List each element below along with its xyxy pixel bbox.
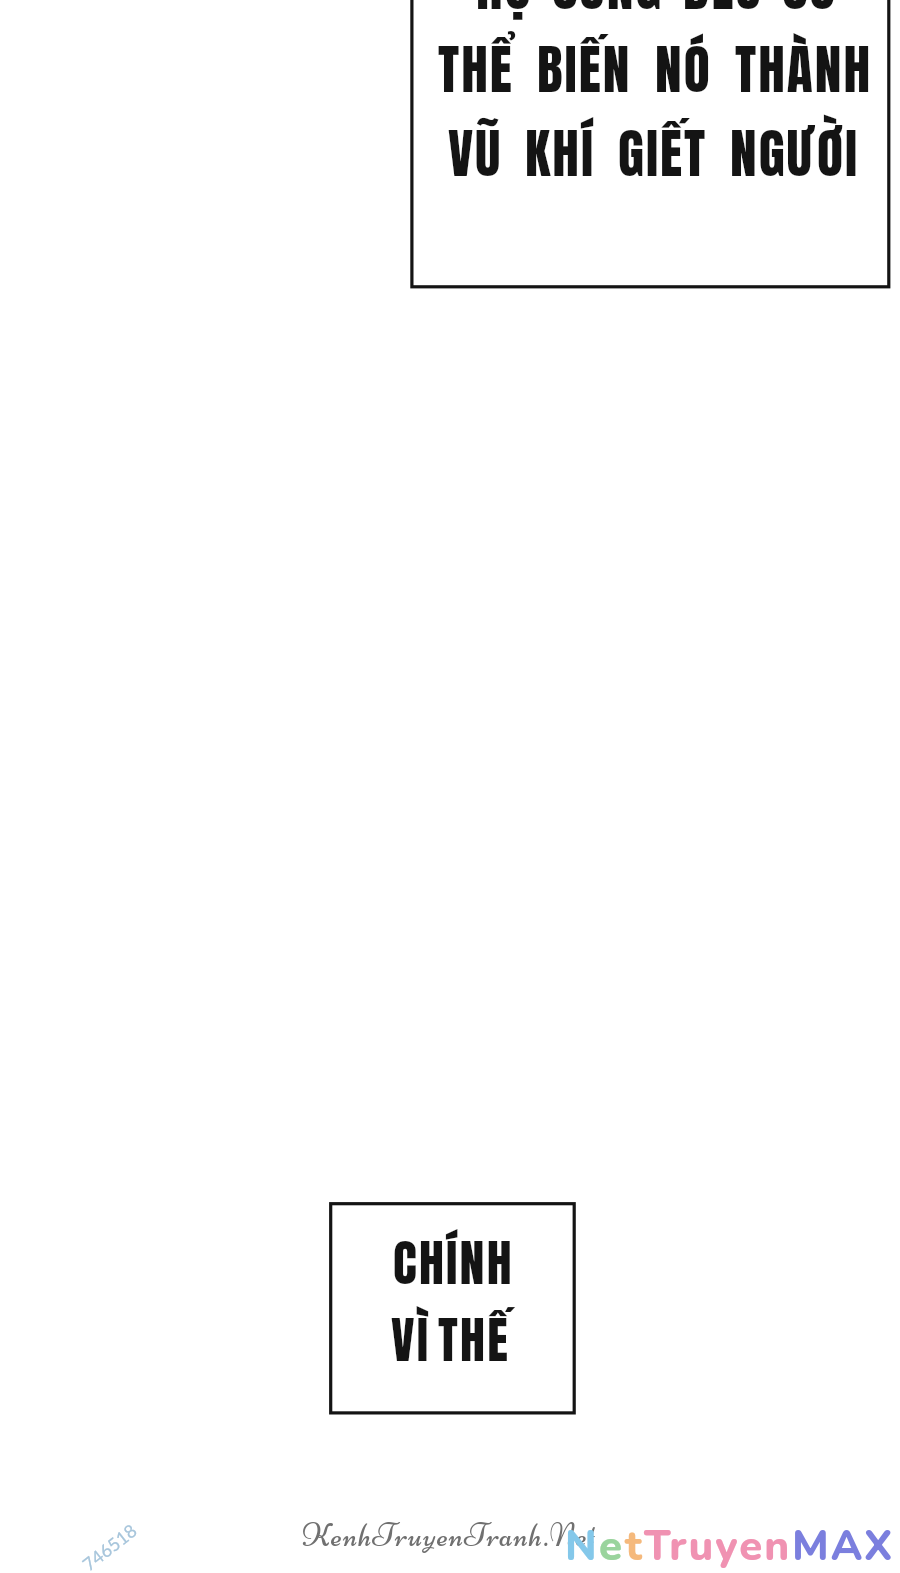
staticText: NGƯỜI bbox=[730, 113, 860, 194]
staticText: ĐỀU bbox=[683, 0, 763, 27]
staticText: BIẾN bbox=[537, 29, 632, 110]
staticText: VÌ bbox=[391, 1302, 431, 1377]
staticText: KenhTruyenTranh.Net bbox=[302, 1516, 596, 1555]
staticText: CÓ bbox=[782, 0, 838, 27]
staticText: MAX bbox=[792, 1518, 895, 1573]
button[interactable]: NetTruyenMAX bbox=[565, 1518, 895, 1573]
staticText: THÀNH bbox=[735, 29, 873, 110]
button[interactable]: HỌ bbox=[0, 0, 900, 1573]
staticText: VŨ bbox=[448, 113, 503, 194]
staticText: Truyen bbox=[644, 1518, 792, 1573]
staticText: KHÍ bbox=[525, 113, 596, 194]
staticText: HỌ bbox=[476, 0, 533, 27]
staticText: THỂ bbox=[438, 29, 514, 110]
staticText: CHÍNH bbox=[393, 1225, 514, 1300]
staticText: 746518 bbox=[78, 1519, 141, 1573]
staticText: N bbox=[565, 1518, 599, 1573]
staticText: e bbox=[599, 1518, 625, 1573]
staticText: GIẾT bbox=[618, 113, 708, 194]
staticText: CŨNG bbox=[552, 0, 664, 27]
staticText: THẾ bbox=[438, 1302, 510, 1377]
staticText: t bbox=[625, 1518, 644, 1573]
staticText: NÓ bbox=[655, 29, 712, 110]
